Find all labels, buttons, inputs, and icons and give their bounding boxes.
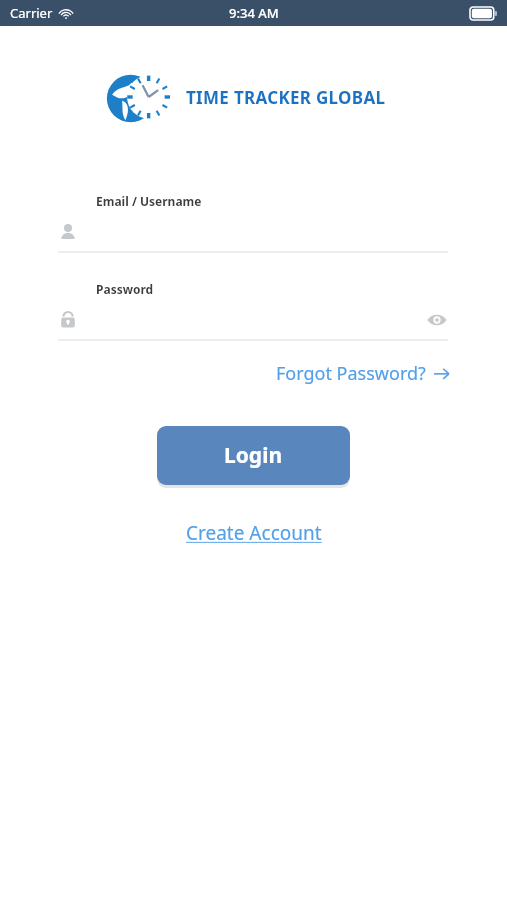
staticText: Password (96, 281, 154, 297)
other: Password (58, 310, 78, 330)
staticText: 9:34 AM (229, 4, 279, 22)
staticText: Email / Username (96, 193, 202, 209)
other: Username (58, 222, 78, 242)
button[interactable]: Password (58, 305, 448, 335)
staticText: Login (224, 441, 283, 470)
staticText: Forgot Password? (276, 361, 426, 386)
button[interactable]: Username (58, 217, 448, 247)
staticText: Carrier (10, 4, 53, 22)
button[interactable]: Create Account (182, 517, 326, 549)
other: Show password (426, 309, 448, 331)
button[interactable]: Login (157, 426, 350, 485)
button[interactable]: Forgot Password? (274, 359, 452, 388)
staticText: Create Account (186, 520, 322, 546)
staticText: TIME TRACKER GLOBAL (186, 86, 386, 109)
